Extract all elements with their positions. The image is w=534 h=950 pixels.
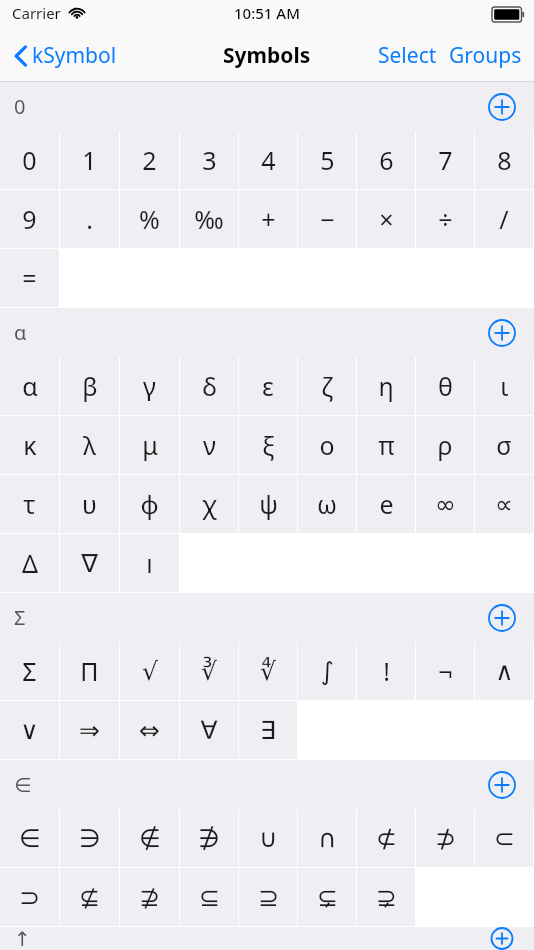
button[interactable]: ξ	[239, 416, 297, 474]
button[interactable]: √	[120, 642, 179, 700]
staticText: ⊋	[376, 883, 397, 912]
button[interactable]: 9	[0, 190, 59, 248]
button[interactable]: %	[120, 190, 179, 248]
button[interactable]: μ	[120, 416, 179, 474]
staticText: ¬	[438, 654, 453, 688]
staticText: ∉	[139, 824, 161, 853]
button[interactable]: ∋	[60, 809, 119, 867]
button[interactable]: θ	[416, 357, 474, 415]
button[interactable]: ο	[298, 416, 356, 474]
button[interactable]: ∩	[298, 809, 356, 867]
button[interactable]: 4	[239, 131, 297, 189]
staticText: 3	[202, 143, 217, 177]
button[interactable]: ∜	[239, 642, 297, 700]
button[interactable]: γ	[120, 357, 179, 415]
staticText: ε	[262, 369, 274, 403]
button[interactable]: e	[357, 475, 415, 533]
button[interactable]: ¬	[416, 642, 474, 700]
button[interactable]: !	[357, 642, 415, 700]
button[interactable]: ∃	[239, 701, 297, 759]
button[interactable]: +	[239, 190, 297, 248]
button[interactable]: ÷	[416, 190, 474, 248]
button[interactable]: Groups	[443, 33, 534, 78]
button[interactable]: ∇	[60, 534, 119, 592]
button[interactable]: ⇒	[60, 701, 119, 759]
button[interactable]: α	[0, 357, 59, 415]
button[interactable]: Add symbol to Σ group	[488, 604, 516, 632]
button[interactable]: ×	[357, 190, 415, 248]
button[interactable]: Σ	[0, 642, 59, 700]
button[interactable]: ε	[239, 357, 297, 415]
button[interactable]: ⊅	[416, 809, 474, 867]
button[interactable]: ∛	[180, 642, 238, 700]
button[interactable]: ⊋	[357, 868, 415, 926]
button[interactable]: ∈	[0, 809, 59, 867]
button[interactable]: κ	[0, 416, 59, 474]
button[interactable]: ⇔	[120, 701, 179, 759]
button[interactable]: ⊆	[180, 868, 238, 926]
button[interactable]: 7	[416, 131, 474, 189]
button[interactable]: ∨	[0, 701, 59, 759]
button[interactable]: ζ	[298, 357, 356, 415]
staticText: √	[142, 657, 158, 686]
button[interactable]: σ	[475, 416, 533, 474]
button[interactable]: υ	[60, 475, 119, 533]
staticText: 5	[320, 143, 335, 177]
button[interactable]: ⊄	[357, 809, 415, 867]
button[interactable]: Select	[372, 33, 443, 78]
button[interactable]: φ	[120, 475, 179, 533]
button[interactable]: ∪	[239, 809, 297, 867]
button[interactable]: ı	[120, 534, 179, 592]
button[interactable]: ∀	[180, 701, 238, 759]
button[interactable]: χ	[180, 475, 238, 533]
button[interactable]: ∧	[475, 642, 533, 700]
button[interactable]: 5	[298, 131, 356, 189]
button[interactable]: β	[60, 357, 119, 415]
button[interactable]: ⊇	[239, 868, 297, 926]
button[interactable]: 1	[60, 131, 119, 189]
button[interactable]: 0	[0, 131, 59, 189]
button[interactable]: η	[357, 357, 415, 415]
button[interactable]: 3	[180, 131, 238, 189]
button[interactable]: λ	[60, 416, 119, 474]
button[interactable]: δ	[180, 357, 238, 415]
button[interactable]: /	[475, 190, 533, 248]
button[interactable]: ∫	[298, 642, 356, 700]
button[interactable]: Add symbol to ↑ group	[488, 927, 516, 950]
staticText: 1	[82, 143, 97, 177]
button[interactable]: Add symbol to α group	[488, 319, 516, 347]
staticText: ⊈	[79, 883, 100, 912]
button[interactable]: ω	[298, 475, 356, 533]
button[interactable]: ι	[475, 357, 533, 415]
staticText: τ	[23, 487, 36, 521]
button[interactable]: =	[0, 249, 59, 307]
staticText: χ	[202, 487, 217, 521]
button[interactable]: .	[60, 190, 119, 248]
button[interactable]: ⊂	[475, 809, 533, 867]
button[interactable]: ⊊	[298, 868, 356, 926]
button[interactable]: 8	[475, 131, 533, 189]
button[interactable]: Add symbol to 0 group	[488, 93, 516, 121]
button[interactable]: 6	[357, 131, 415, 189]
button[interactable]: ∝	[475, 475, 533, 533]
button[interactable]: Δ	[0, 534, 59, 592]
button[interactable]: τ	[0, 475, 59, 533]
button[interactable]: Add symbol to ∈ group	[488, 771, 516, 799]
button[interactable]: −	[298, 190, 356, 248]
button[interactable]: ⊉	[120, 868, 179, 926]
button[interactable]: ⊃	[0, 868, 59, 926]
staticText: ⊉	[139, 883, 160, 912]
button[interactable]: ∉	[120, 809, 179, 867]
button[interactable]: ψ	[239, 475, 297, 533]
button[interactable]: ‰	[180, 190, 238, 248]
button[interactable]: 2	[120, 131, 179, 189]
button[interactable]: Π	[60, 642, 119, 700]
button[interactable]: ρ	[416, 416, 474, 474]
staticText: ∈	[19, 824, 41, 853]
button[interactable]: ∌	[180, 809, 238, 867]
button[interactable]: kSymbol	[0, 35, 127, 76]
button[interactable]: ∞	[416, 475, 474, 533]
button[interactable]: π	[357, 416, 415, 474]
button[interactable]: ⊈	[60, 868, 119, 926]
button[interactable]: ν	[180, 416, 238, 474]
